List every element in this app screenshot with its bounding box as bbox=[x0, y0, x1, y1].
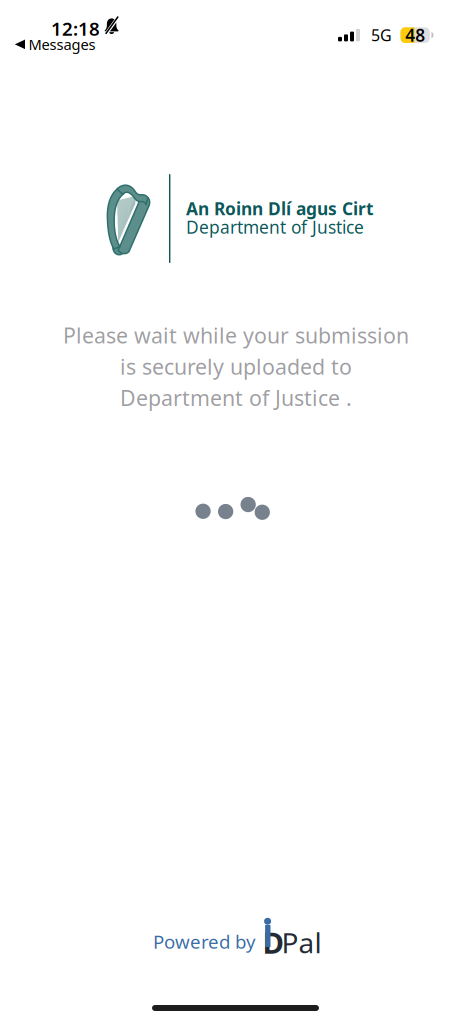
staticText: Messages bbox=[28, 35, 95, 54]
staticText: Pal bbox=[281, 924, 321, 961]
staticText: Powered by bbox=[153, 929, 256, 954]
button[interactable]: Back to Messages bbox=[13, 32, 97, 57]
staticText: is securely uploaded to bbox=[120, 352, 352, 381]
staticText: Department of Justice . bbox=[120, 384, 352, 412]
staticText: 12:18 bbox=[51, 16, 100, 41]
staticText: D bbox=[262, 923, 283, 962]
staticText: Department of Justice bbox=[186, 215, 364, 238]
staticText: 48 bbox=[405, 24, 425, 47]
staticText: An Roinn Dlí agus Cirt bbox=[186, 197, 374, 220]
staticText: 5G bbox=[371, 24, 392, 46]
staticText: Please wait while your submission bbox=[63, 321, 409, 349]
